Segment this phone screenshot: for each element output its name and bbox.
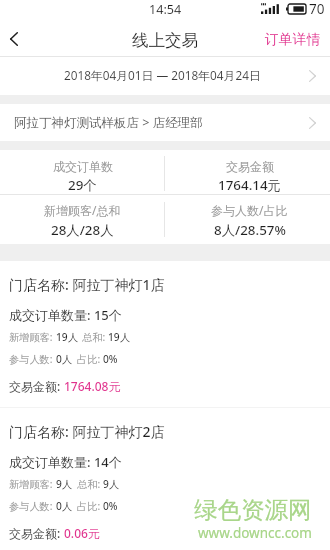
staticText: 新增顾客/总和 xyxy=(44,202,121,218)
staticText: 2018年04月01日 — 2018年04月24日 xyxy=(64,67,261,83)
staticText: 8人/28.57% xyxy=(214,221,286,239)
staticText: 绿色资源网 xyxy=(194,495,312,525)
staticText: 交易金额 xyxy=(226,159,274,174)
staticText: 门店名称: 阿拉丁神灯1店 xyxy=(9,275,165,294)
staticText: 线上交易 xyxy=(132,30,198,51)
staticText: 19人 xyxy=(108,330,130,344)
staticText: 参与人数/占比 xyxy=(211,202,288,218)
staticText: 29个 xyxy=(68,176,97,194)
staticText: 成交订单数量: 14个 xyxy=(9,453,122,471)
button[interactable]: 参与人数/占比 xyxy=(167,195,330,244)
staticText: 28人/28人 xyxy=(51,221,114,239)
staticText: 参与人数: xyxy=(9,352,56,366)
staticText: 占比: xyxy=(77,499,103,513)
staticText: 0人 xyxy=(56,352,73,366)
staticText: 70 xyxy=(309,0,325,18)
staticText: 9人 xyxy=(56,477,73,491)
staticText: 门店名称: 阿拉丁神灯2店 xyxy=(9,422,165,441)
button[interactable]: 阿拉丁神灯测试样板店 > 店经理部 xyxy=(0,104,330,141)
staticText: 占比: xyxy=(77,352,103,366)
staticText: 1764.14元 xyxy=(218,176,281,194)
staticText: 新增顾客: xyxy=(9,330,56,344)
staticText: 0人 xyxy=(56,499,73,513)
button[interactable]: Back xyxy=(0,22,30,56)
staticText: 新增顾客: xyxy=(9,477,56,491)
staticText: 交易金额: xyxy=(9,378,64,394)
button[interactable]: 门店名称: 阿拉丁神灯2店 xyxy=(0,408,330,550)
button[interactable]: 2018年04月01日 — 2018年04月24日 xyxy=(0,57,330,95)
staticText: 0.06元 xyxy=(64,525,100,541)
staticText: 订单详情 xyxy=(265,31,321,48)
button[interactable]: 交易金额 xyxy=(167,150,330,194)
staticText: 总和: xyxy=(82,330,108,344)
button[interactable]: 成交订单数 xyxy=(0,150,165,194)
staticText: 阿拉丁神灯测试样板店 > 店经理部 xyxy=(14,114,203,131)
staticText: 9人 xyxy=(103,477,120,491)
staticText: 0% xyxy=(103,352,118,366)
staticText: 19人 xyxy=(56,330,78,344)
staticText: 参与人数: xyxy=(9,499,56,513)
button[interactable]: 订单详情 xyxy=(265,22,330,56)
staticText: 成交订单数 xyxy=(53,159,113,174)
staticText: 总和: xyxy=(77,477,103,491)
button[interactable]: 门店名称: 阿拉丁神灯1店 xyxy=(0,261,330,407)
button[interactable]: 新增顾客/总和 xyxy=(0,195,165,244)
staticText: 1764.08元 xyxy=(64,378,121,394)
staticText: 0% xyxy=(103,499,118,513)
staticText: 14:54 xyxy=(149,1,182,18)
staticText: www.downcc.com xyxy=(198,524,312,542)
staticText: 成交订单数量: 15个 xyxy=(9,306,122,324)
staticText: 交易金额: xyxy=(9,525,64,541)
